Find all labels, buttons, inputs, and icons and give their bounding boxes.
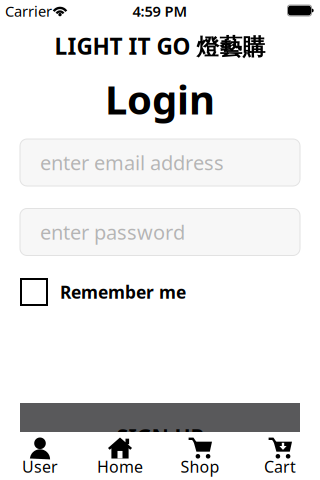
- staticText: 4:59 PM: [132, 1, 187, 21]
- button[interactable]: enter password: [20, 208, 300, 255]
- button[interactable]: Remember me: [20, 278, 48, 306]
- staticText: Remember me: [60, 280, 186, 303]
- button[interactable]: User: [0, 432, 80, 480]
- button[interactable]: Shop: [160, 432, 240, 480]
- staticText: SIGN UP: [116, 422, 203, 450]
- staticText: User: [22, 456, 58, 477]
- button[interactable]: enter email address: [20, 139, 300, 186]
- staticText: Carrier: [5, 1, 52, 21]
- staticText: LIGHT IT GO 燈藝購: [54, 31, 265, 61]
- staticText: enter email address: [40, 149, 224, 176]
- button[interactable]: Cart: [240, 432, 320, 480]
- staticText: Home: [97, 456, 143, 477]
- staticText: Login: [105, 72, 215, 125]
- button[interactable]: SIGN UP: [20, 403, 300, 469]
- staticText: Cart: [264, 456, 296, 477]
- staticText: enter password: [40, 219, 185, 245]
- staticText: Shop: [180, 456, 219, 477]
- button[interactable]: Home: [80, 432, 160, 480]
